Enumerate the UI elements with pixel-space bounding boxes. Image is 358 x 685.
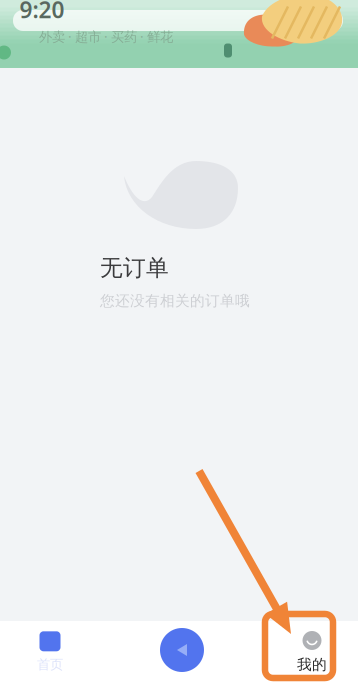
staticText: 无订单	[100, 254, 169, 282]
button[interactable]: 附近	[156, 624, 208, 676]
staticText: 您还没有相关的订单哦	[100, 292, 250, 310]
staticText: 外卖 · 超市 · 买药 · 鲜花	[39, 28, 173, 45]
button[interactable]: 我的	[277, 628, 347, 676]
staticText: 我的	[297, 655, 327, 673]
staticText: 9:20	[19, 0, 64, 24]
staticText: 首页	[37, 656, 63, 673]
button[interactable]: 首页	[15, 628, 85, 676]
